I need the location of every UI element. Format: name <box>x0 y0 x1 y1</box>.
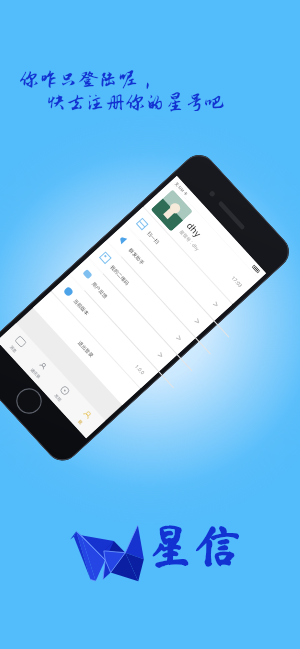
staticText: 17:03 <box>230 275 243 289</box>
staticText: 无 SIM 卡 <box>174 180 189 197</box>
staticText: 发现 <box>53 392 63 402</box>
staticText: 星信 <box>147 522 241 569</box>
button[interactable]: 通讯录 <box>19 348 61 389</box>
staticText: 消息 <box>9 344 18 354</box>
staticText: 群发助手 <box>128 246 147 266</box>
staticText: 我的二维码 <box>109 263 132 287</box>
button[interactable]: 我的二维码 <box>88 241 195 354</box>
button[interactable]: dhy <box>144 182 259 304</box>
staticText: 退出登录 <box>77 339 96 359</box>
staticText: 星信号：dhy <box>178 229 201 253</box>
button[interactable]: 消息 <box>0 323 38 365</box>
staticText: 快去注册你的星号吧 <box>46 92 225 114</box>
button[interactable]: 群发助手 <box>107 224 214 337</box>
button[interactable]: 退出登录 <box>33 291 140 405</box>
button[interactable]: 发现 <box>41 372 83 414</box>
staticText: 当前版本 <box>72 297 92 317</box>
staticText: 你咋只登陆呢， <box>19 69 158 91</box>
staticText: 扫一扫 <box>146 229 162 246</box>
staticText: 1.0.0 <box>133 363 146 377</box>
button[interactable]: 当前版本 <box>51 275 158 388</box>
staticText: 用户反馈 <box>91 280 110 300</box>
button[interactable]: 扫一扫 <box>125 207 232 321</box>
staticText: dhy <box>184 219 204 239</box>
button[interactable]: 用户反馈 <box>70 258 177 371</box>
button[interactable]: 我 <box>64 396 105 438</box>
staticText: 我 <box>77 418 84 425</box>
staticText: 通讯录 <box>30 366 42 379</box>
